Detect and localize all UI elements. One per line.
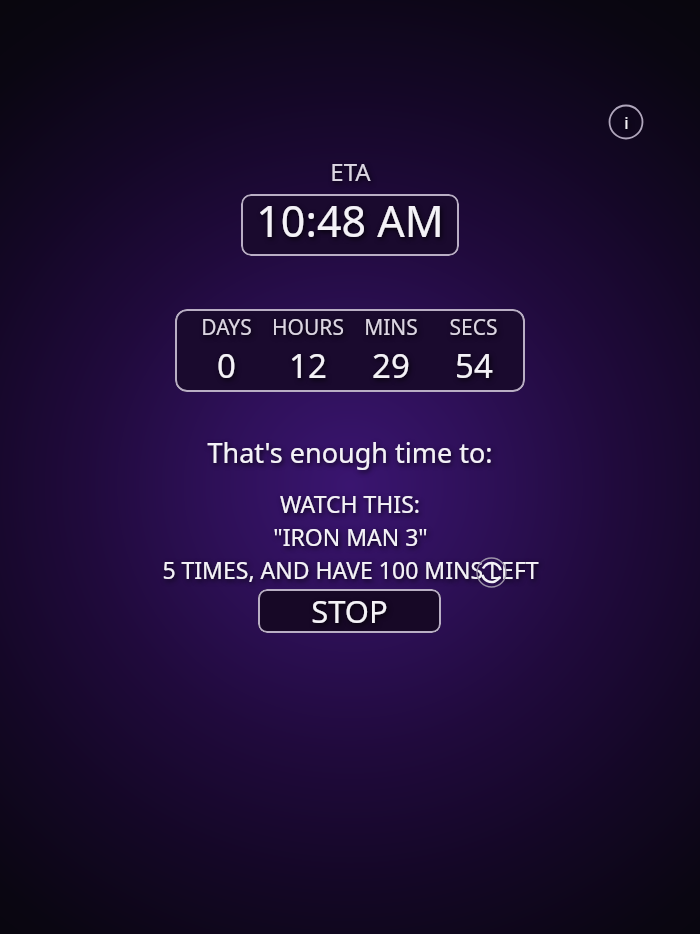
staticText: HOURS bbox=[272, 313, 344, 342]
staticText: DAYS bbox=[201, 313, 252, 342]
button[interactable]: DAYS bbox=[175, 309, 525, 392]
staticText: MINS bbox=[364, 313, 418, 342]
staticText: 29 bbox=[372, 343, 410, 388]
staticText: ETA bbox=[330, 155, 371, 188]
button[interactable]: Refresh bbox=[476, 557, 507, 588]
staticText: 10:48 AM bbox=[256, 194, 444, 250]
button[interactable]: STOP bbox=[258, 589, 441, 633]
staticText: That's enough time to: bbox=[207, 434, 493, 471]
staticText: STOP bbox=[311, 590, 388, 632]
button[interactable]: Info bbox=[608, 104, 644, 140]
staticText: SECS bbox=[449, 313, 498, 342]
button[interactable]: 10:48 AM bbox=[241, 194, 459, 256]
staticText: 0 bbox=[217, 343, 236, 388]
staticText: 5 TIMES, AND HAVE 100 MINS LEFT bbox=[162, 554, 539, 585]
staticText: i bbox=[624, 111, 629, 134]
staticText: "IRON MAN 3" bbox=[273, 521, 428, 552]
staticText: WATCH THIS: bbox=[280, 488, 420, 519]
staticText: 54 bbox=[455, 343, 493, 388]
staticText: 12 bbox=[289, 343, 327, 388]
